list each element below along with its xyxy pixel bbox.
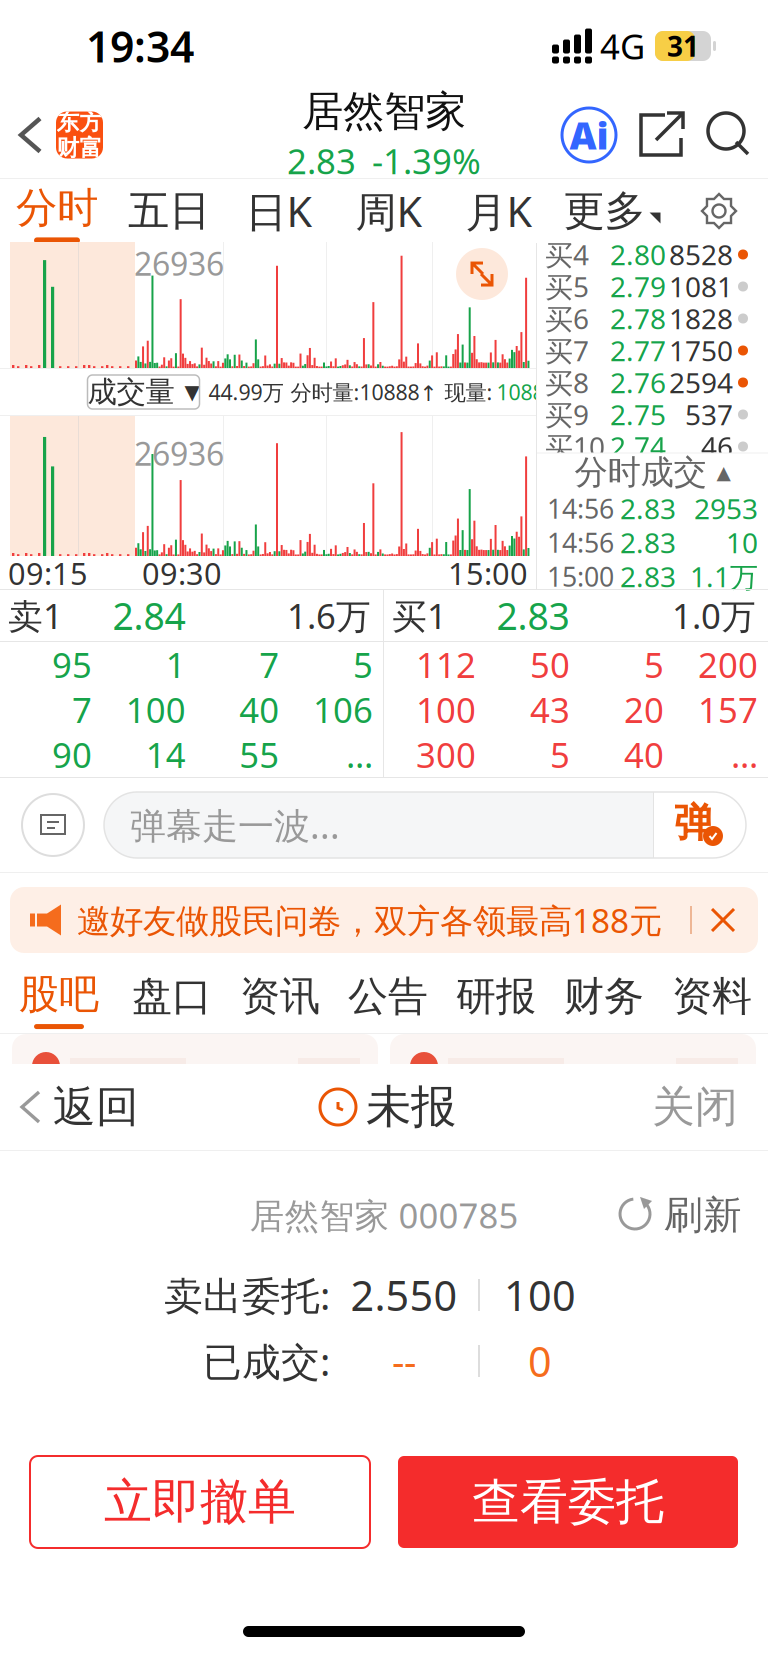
staticText: 5 xyxy=(644,641,664,687)
button[interactable]: 更多 xyxy=(554,179,670,243)
staticText: ... xyxy=(346,731,373,777)
staticText: 返回 xyxy=(53,1081,139,1133)
staticText: 7 xyxy=(259,641,279,687)
staticText: 537 xyxy=(685,396,733,433)
staticText: 5 xyxy=(353,641,373,687)
button[interactable]: 资讯 xyxy=(226,961,334,1032)
staticText: 现量: xyxy=(444,378,492,406)
button[interactable]: 分时成交 xyxy=(537,453,768,491)
staticText: 2.550 xyxy=(350,1268,457,1322)
button[interactable]: 月K xyxy=(444,179,554,243)
staticText: 查看委托 xyxy=(472,1472,664,1531)
staticText: 买9 xyxy=(545,396,589,433)
button[interactable]: Chart settings xyxy=(700,192,738,230)
staticText: 2.80 xyxy=(610,236,666,273)
button[interactable]: Comments xyxy=(22,794,84,856)
button[interactable]: Fullscreen xyxy=(456,248,508,300)
button[interactable]: 周K xyxy=(334,179,444,243)
staticText: 卖1 xyxy=(8,592,63,638)
button[interactable]: 研报 xyxy=(442,961,550,1032)
staticText: 日K xyxy=(245,184,312,238)
staticText: ▲ xyxy=(716,462,730,483)
button[interactable]: AI assistant xyxy=(560,106,618,164)
button[interactable]: 东方 xyxy=(0,92,113,178)
staticText: 资讯 xyxy=(240,972,320,1021)
staticText: 1828 xyxy=(669,300,733,337)
button[interactable]: 资料 xyxy=(658,961,766,1032)
button[interactable]: 盘口 xyxy=(118,961,226,1032)
button[interactable]: 弹 xyxy=(654,792,746,858)
button[interactable]: 关闭 xyxy=(652,1064,768,1150)
staticText: 26936 xyxy=(134,432,224,474)
staticText: 买6 xyxy=(545,300,589,337)
staticText: 东方 xyxy=(56,108,102,136)
staticText: 2.77 xyxy=(610,332,666,369)
staticText: 46 xyxy=(701,428,733,465)
staticText: 112 xyxy=(416,641,476,687)
staticText: 95 xyxy=(52,641,92,687)
button[interactable]: 刷新 xyxy=(618,1193,768,1237)
staticText: 2.84 xyxy=(112,591,185,640)
staticText: 40 xyxy=(239,686,279,732)
staticText: 15:00 xyxy=(448,553,528,593)
staticText: 09:30 xyxy=(142,553,222,593)
staticText: 1.0万 xyxy=(672,592,756,638)
staticText: 财务 xyxy=(564,972,644,1021)
button[interactable]: 股吧 xyxy=(0,961,118,1032)
staticText: ▼ xyxy=(184,381,199,403)
staticText: 300 xyxy=(416,731,476,777)
staticText: 立即撤单 xyxy=(104,1472,296,1531)
staticText: 55 xyxy=(239,731,279,777)
staticText: 5 xyxy=(550,731,570,777)
staticText: 44.99万 xyxy=(208,378,283,406)
staticText: 19:34 xyxy=(86,18,194,74)
button[interactable]: 日K xyxy=(224,179,334,243)
staticText: 106 xyxy=(313,686,373,732)
staticText: 股吧 xyxy=(19,970,99,1019)
staticText: 40 xyxy=(624,731,664,777)
staticText: 100 xyxy=(416,686,476,732)
button[interactable]: Share xyxy=(638,112,686,158)
staticText: 周K xyxy=(355,184,422,238)
staticText: 10888 xyxy=(496,378,556,406)
button[interactable]: 成交量 xyxy=(87,375,199,409)
button[interactable]: Search xyxy=(706,112,752,158)
button[interactable]: 公告 xyxy=(334,961,442,1032)
staticText: 2.83 xyxy=(287,138,356,184)
staticText: 买1 xyxy=(392,592,447,638)
staticText: 2594 xyxy=(669,364,733,401)
staticText: 200 xyxy=(698,641,758,687)
staticText: 2.74 xyxy=(610,428,666,465)
button[interactable]: 五日 xyxy=(114,179,224,243)
staticText: 买4 xyxy=(545,236,589,273)
staticText: 15:00 xyxy=(547,559,614,594)
staticText: 2.75 xyxy=(610,396,666,433)
staticText: 14:56 xyxy=(547,491,614,526)
staticText: 居然智家 xyxy=(302,86,466,137)
staticText: 157 xyxy=(698,686,758,732)
staticText: 五日 xyxy=(128,186,210,236)
staticText: 2.76 xyxy=(610,364,666,401)
staticText: 刷新 xyxy=(664,1191,742,1239)
staticText: 分时 xyxy=(16,183,98,233)
staticText: 未报 xyxy=(366,1079,456,1135)
staticText: 8528 xyxy=(669,236,733,273)
button[interactable]: 立即撤单 xyxy=(30,1456,370,1548)
staticText: 31 xyxy=(667,27,699,65)
staticText: 50 xyxy=(530,641,570,687)
staticText: 1 xyxy=(166,641,186,687)
staticText: 20 xyxy=(624,686,664,732)
staticText: 弹 xyxy=(674,798,714,847)
staticText: 盘口 xyxy=(132,972,212,1021)
button[interactable]: 邀好友做股民问卷，双方各领最高188元 xyxy=(10,887,758,953)
button[interactable]: 分时 xyxy=(0,179,114,243)
staticText: 14 xyxy=(146,731,186,777)
staticText: 26936 xyxy=(134,242,224,284)
button[interactable]: 查看委托 xyxy=(398,1456,738,1548)
staticText: 买5 xyxy=(545,268,589,305)
button[interactable]: 财务 xyxy=(550,961,658,1032)
staticText: 1750 xyxy=(669,332,733,369)
staticText: 14:56 xyxy=(547,525,614,560)
staticText: 2.78 xyxy=(610,300,666,337)
button[interactable]: 返回 xyxy=(0,1064,139,1150)
